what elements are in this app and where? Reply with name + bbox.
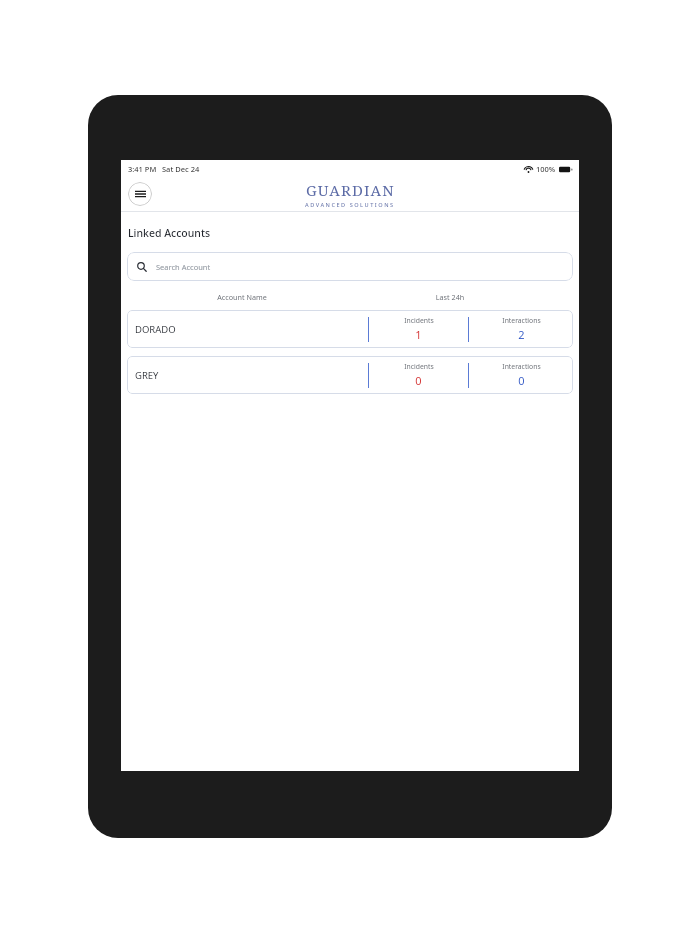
staticText: Sat Dec 24 (162, 164, 200, 174)
button[interactable]: GREY (127, 356, 573, 394)
staticText: Interactions (502, 362, 541, 371)
staticText: 100% (536, 164, 556, 174)
button[interactable]: Search Account (127, 252, 573, 281)
staticText: 1 (415, 327, 422, 342)
button[interactable]: Open navigation menu (128, 182, 152, 206)
staticText: Linked Accounts (128, 226, 211, 240)
button[interactable]: DORADO (127, 310, 573, 348)
staticText: Search Account (156, 262, 211, 272)
staticText: DORADO (135, 323, 176, 336)
staticText: 2 (518, 327, 525, 342)
staticText: Account Name (202, 292, 282, 302)
staticText: Incidents (404, 362, 434, 371)
staticText: 0 (415, 373, 422, 388)
staticText: GREY (135, 369, 159, 382)
staticText: Incidents (404, 316, 434, 325)
staticText: 3:41 PM (128, 164, 157, 174)
staticText: Last 24h (410, 292, 490, 302)
staticText: ADVANCED SOLUTIONS (305, 201, 395, 209)
staticText: GUARDIAN (306, 180, 395, 200)
staticText: 0 (518, 373, 525, 388)
staticText: Interactions (502, 316, 541, 325)
